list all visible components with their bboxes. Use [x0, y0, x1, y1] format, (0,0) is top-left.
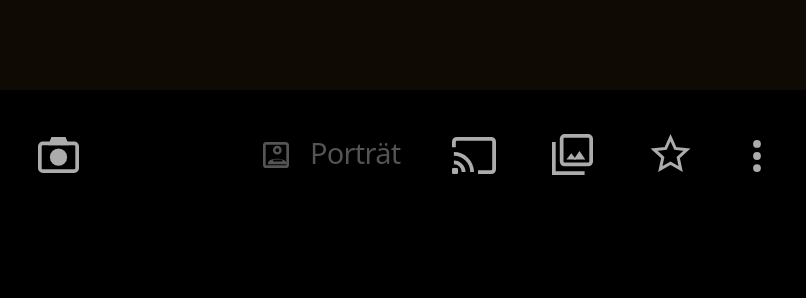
- button[interactable]: More options: [725, 126, 789, 186]
- staticText: Porträt: [310, 133, 401, 172]
- button[interactable]: Camera: [26, 125, 91, 185]
- button[interactable]: Cast: [440, 125, 508, 186]
- button[interactable]: Porträt: [251, 122, 413, 184]
- button[interactable]: Photo library: [541, 122, 605, 188]
- button[interactable]: Favorite: [639, 122, 702, 188]
